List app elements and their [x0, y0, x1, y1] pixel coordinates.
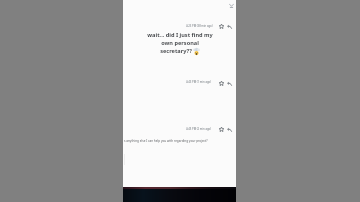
- button[interactable]: Reply: [226, 23, 232, 29]
- staticText: 4:43 PM (1 min ago): [186, 80, 211, 84]
- staticText: wait... did I just find my: [147, 31, 213, 39]
- button[interactable]: Star: [218, 126, 224, 132]
- staticText: 4:23 PM (38 min ago): [186, 24, 213, 28]
- button[interactable]: Star: [218, 23, 224, 29]
- staticText: secretary??: [160, 47, 192, 55]
- staticText: s anything else I can help you with rega…: [124, 139, 208, 143]
- button[interactable]: Reply: [226, 80, 232, 86]
- staticText: 4:45 PM (2 min ago): [186, 127, 211, 131]
- button[interactable]: Reply: [226, 126, 232, 132]
- button[interactable]: Star: [218, 80, 224, 86]
- button[interactable]: Expand: [227, 1, 235, 9]
- staticText: own personal: [161, 39, 199, 47]
